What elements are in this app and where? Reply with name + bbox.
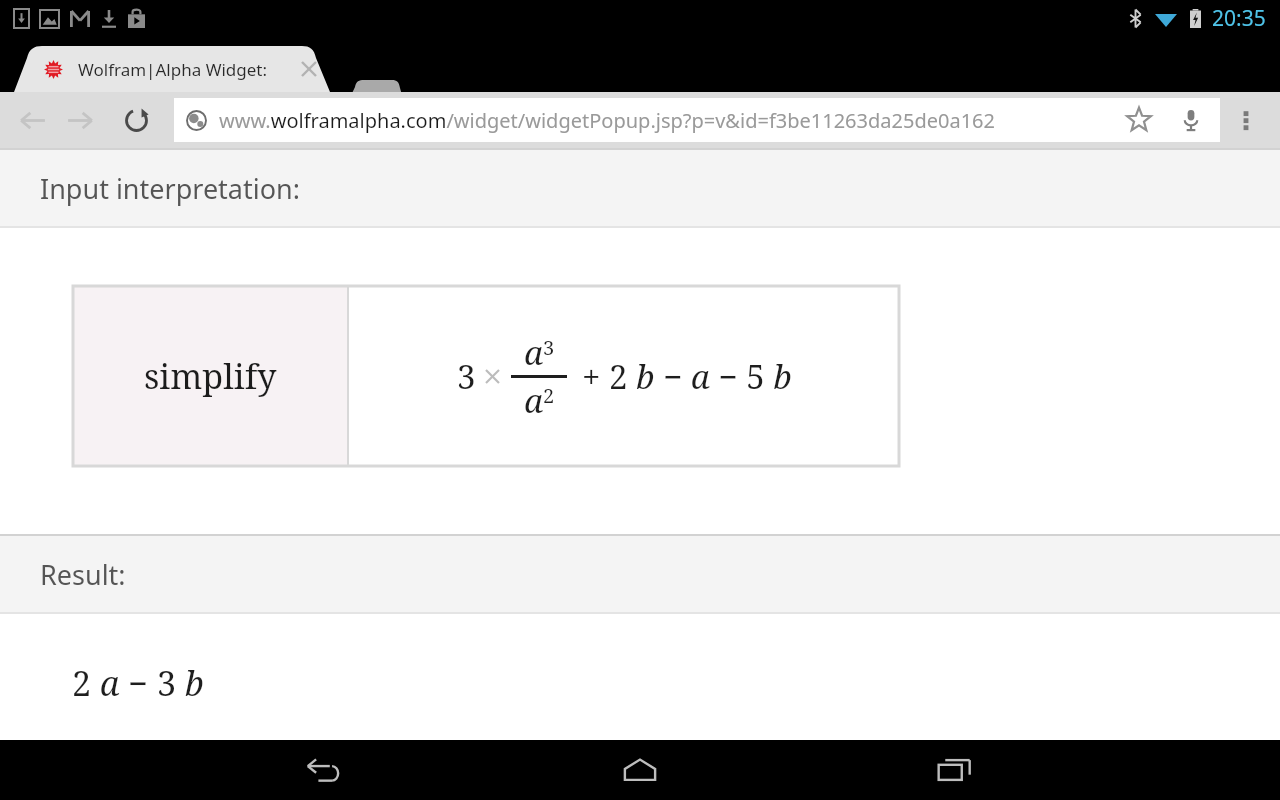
button[interactable]: Other tab (344, 80, 406, 110)
staticText: 20:35 (1212, 4, 1266, 33)
button[interactable]: Reload (112, 96, 160, 144)
button[interactable]: Back (290, 740, 362, 800)
staticText: Input interpretation: (40, 170, 300, 207)
button[interactable]: Wolfram|Alpha Widget: (14, 46, 344, 92)
staticText: 2 a − 3 b (72, 660, 204, 706)
button[interactable]: More options (1220, 94, 1272, 146)
staticText: 3 (457, 354, 476, 399)
staticText: a2 (524, 378, 555, 423)
staticText: simplify (144, 353, 277, 399)
button[interactable]: Voice search (1172, 101, 1210, 139)
staticText: + 2 b − a − 5 b (582, 354, 792, 399)
button[interactable]: Bookmark (1120, 101, 1158, 139)
button[interactable]: Back (8, 96, 56, 144)
staticText: a3 (524, 330, 555, 375)
button[interactable]: www.wolframalpha.com/widget/widgetPopup.… (174, 98, 1220, 142)
staticText: Wolfram|Alpha Widget: (78, 58, 268, 81)
button[interactable]: Home (604, 740, 676, 800)
staticText: www.wolframalpha.com/widget/widgetPopup.… (219, 107, 995, 134)
button[interactable]: Close tab (296, 56, 322, 82)
button[interactable]: Forward (56, 96, 104, 144)
staticText: Result: (40, 556, 126, 593)
button[interactable]: Recent apps (918, 740, 990, 800)
